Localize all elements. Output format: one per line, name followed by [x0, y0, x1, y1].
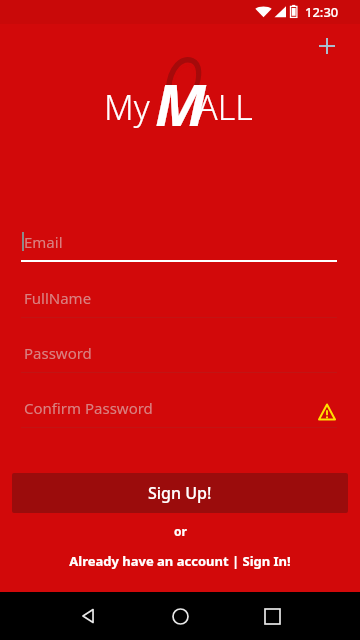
staticText: or	[174, 523, 187, 539]
button[interactable]: Confirm Password	[22, 394, 338, 428]
staticText: FullName	[24, 288, 92, 308]
staticText: M	[155, 64, 207, 143]
staticText: Email	[24, 232, 63, 252]
staticText: Confirm Password	[24, 398, 153, 418]
button[interactable]: FullName	[22, 284, 338, 318]
button[interactable]: Password	[22, 339, 338, 373]
staticText: ALL	[197, 84, 253, 130]
staticText: 12:30	[305, 3, 339, 21]
button[interactable]: Recent apps	[248, 592, 296, 640]
staticText: My	[104, 84, 150, 130]
button[interactable]: Add	[309, 28, 345, 64]
button[interactable]: Already have an account | Sign In!	[0, 549, 360, 573]
staticText: Already have an account | Sign In!	[69, 552, 291, 570]
other: Warning	[316, 401, 338, 423]
button[interactable]: Sign Up!	[12, 473, 348, 513]
button[interactable]: Back	[64, 592, 112, 640]
button[interactable]: Email	[22, 228, 338, 262]
staticText: Sign Up!	[148, 482, 212, 504]
staticText: Password	[24, 343, 92, 363]
button[interactable]: Home	[156, 592, 204, 640]
